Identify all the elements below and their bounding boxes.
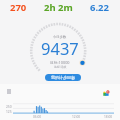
- staticText: 我的计步目标: [51, 75, 75, 80]
- staticText: 06:00: [33, 115, 42, 119]
- staticText: 12:00: [72, 115, 81, 119]
- button[interactable]: 我的计步目标: [45, 74, 81, 81]
- staticText: 今日步数: [53, 35, 67, 39]
- button[interactable]: 6.22: [79, 1, 119, 14]
- button[interactable]: 270: [0, 1, 38, 14]
- staticText: 9437: [41, 37, 79, 59]
- staticText: 270: [10, 1, 27, 14]
- staticText: 250: [6, 105, 12, 109]
- staticText: 125: [6, 110, 12, 114]
- staticText: 目标:10000: [50, 60, 70, 65]
- staticText: 18:00: [104, 115, 113, 119]
- button[interactable]: 2h 2m: [38, 1, 78, 14]
- staticText: 2h 2m: [44, 1, 73, 14]
- staticText: 6.22: [90, 1, 109, 14]
- button[interactable]: Map: [103, 90, 110, 97]
- staticText: 达标 活跃: [54, 65, 67, 69]
